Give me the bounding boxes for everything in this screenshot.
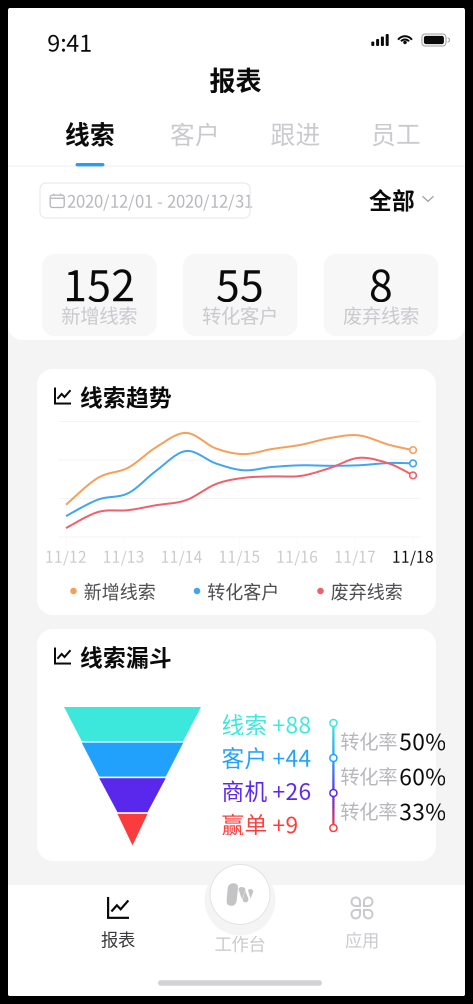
staticText: 33% [399,794,446,827]
button[interactable]: 8 [324,254,438,336]
staticText: 赢单 +9 [221,807,298,840]
staticText: 线索 +88 [221,707,311,740]
button[interactable]: 跟进 [245,108,345,170]
button[interactable]: 报表 [73,893,163,955]
staticText: 55 [216,252,264,314]
staticText: 60% [399,759,446,792]
staticText: 应用 [345,926,379,952]
staticText: 废弃线索 [343,301,419,329]
button[interactable]: 工作台 [210,864,270,956]
button[interactable]: 应用 [317,893,407,955]
staticText: 2020/12/01 - 2020/12/31 [67,188,253,212]
staticText: 报表 [101,926,135,951]
button[interactable]: 客户 [145,108,245,170]
staticText: 9:41 [47,25,92,58]
button[interactable]: 152 [42,254,157,336]
staticText: 8 [369,252,393,314]
staticText: 报表 [209,60,261,98]
staticText: 线索漏斗 [80,640,172,672]
staticText: 新增线索 [84,578,156,604]
staticText: 转化率 [340,761,397,789]
staticText: 11/18 [392,545,434,567]
staticText: 客户 [170,115,220,151]
staticText: 152 [63,252,135,314]
staticText: 废弃线索 [331,578,403,604]
staticText: 新增线索 [61,301,137,329]
button[interactable]: 线索 [40,108,140,170]
staticText: 11/16 [276,545,318,567]
staticText: 客户 +44 [221,740,311,773]
button[interactable]: 2020/12/01 - 2020/12/31 [40,183,250,218]
staticText: 工作台 [214,930,265,956]
button[interactable]: 55 [183,254,297,336]
staticText: 线索趋势 [80,380,172,412]
button[interactable]: 员工 [346,108,446,170]
staticText: 员工 [371,115,421,151]
staticText: 全部 [369,183,415,215]
staticText: 商机 +26 [221,774,311,807]
staticText: 转化客户 [202,301,278,329]
staticText: 11/12 [45,545,87,567]
button[interactable]: 全部 [361,177,451,221]
staticText: 11/14 [161,545,203,567]
staticText: 11/13 [103,545,145,567]
staticText: 11/17 [334,545,376,567]
staticText: 50% [399,724,446,757]
staticText: 11/15 [218,545,260,567]
staticText: 跟进 [270,115,320,151]
staticText: 转化率 [340,726,397,754]
staticText: 转化率 [340,796,397,824]
staticText: 转化客户 [207,578,279,604]
staticText: 线索 [65,115,115,151]
